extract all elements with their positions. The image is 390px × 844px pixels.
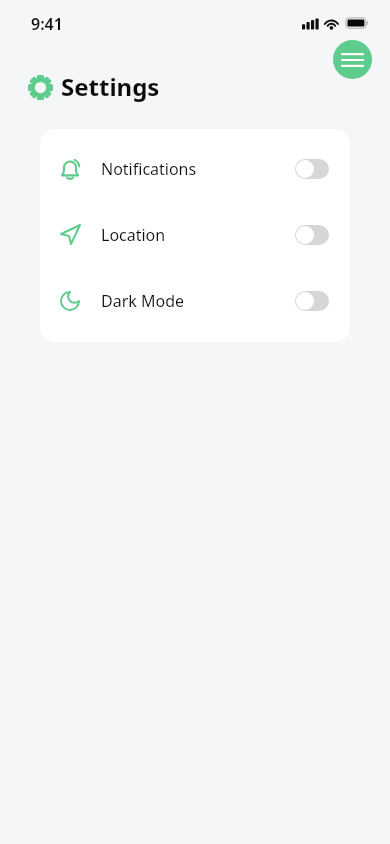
button[interactable]: Toggle bbox=[295, 159, 329, 179]
button[interactable]: Location bbox=[40, 202, 350, 268]
staticText: Notifications bbox=[101, 158, 197, 180]
staticText: Dark Mode bbox=[101, 290, 185, 312]
staticText: Location bbox=[101, 224, 166, 246]
staticText: Settings bbox=[61, 70, 160, 103]
button[interactable]: Menu bbox=[333, 40, 372, 79]
button[interactable]: Toggle bbox=[295, 291, 329, 311]
button[interactable]: Dark Mode bbox=[40, 268, 350, 334]
staticText: 9:41 bbox=[31, 13, 63, 35]
button[interactable]: Notifications bbox=[40, 136, 350, 202]
button[interactable]: Toggle bbox=[295, 225, 329, 245]
